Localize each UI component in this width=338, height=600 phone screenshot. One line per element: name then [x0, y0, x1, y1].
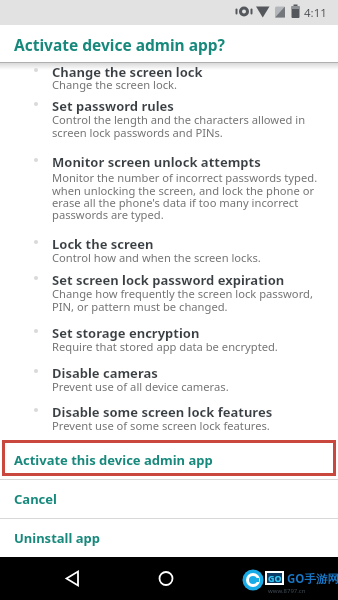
staticText: Lock the screen	[52, 235, 154, 253]
staticText: Cancel	[14, 490, 57, 508]
button[interactable]	[48, 557, 96, 600]
staticText: Control how and when the screen locks.	[52, 250, 326, 265]
button[interactable]	[142, 557, 190, 600]
staticText: Control the length and the characters al…	[52, 112, 326, 140]
staticText: GO手游网	[287, 571, 338, 587]
staticText: Change how frequently the screen lock pa…	[52, 286, 326, 314]
staticText: Uninstall app	[14, 529, 100, 547]
staticText: Change the screen lock.	[52, 77, 326, 92]
button[interactable]: Uninstall app	[0, 519, 338, 557]
staticText: www.8797.cn	[268, 587, 306, 595]
staticText: Activate this device admin app	[14, 451, 213, 469]
staticText: GO	[268, 572, 282, 584]
staticText: Prevent use of some screen lock features…	[52, 418, 326, 433]
button[interactable]: Cancel	[0, 480, 338, 518]
button[interactable]: Activate this device admin app	[0, 441, 338, 479]
staticText: Monitor screen unlock attempts	[52, 153, 261, 171]
staticText: Set storage encryption	[52, 324, 200, 342]
staticText: 4:11	[304, 5, 327, 21]
staticText: Disable some screen lock features	[52, 403, 273, 421]
staticText: Disable cameras	[52, 364, 158, 382]
staticText: Prevent use of all device cameras.	[52, 379, 326, 394]
staticText: Set screen lock password expiration	[52, 271, 285, 289]
staticText: Monitor the number of incorrect password…	[52, 170, 326, 222]
staticText: Change the screen lock	[52, 63, 203, 81]
staticText: Activate device admin app?	[14, 34, 225, 55]
staticText: Require that stored app data be encrypte…	[52, 339, 326, 354]
staticText: Set password rules	[52, 97, 174, 115]
